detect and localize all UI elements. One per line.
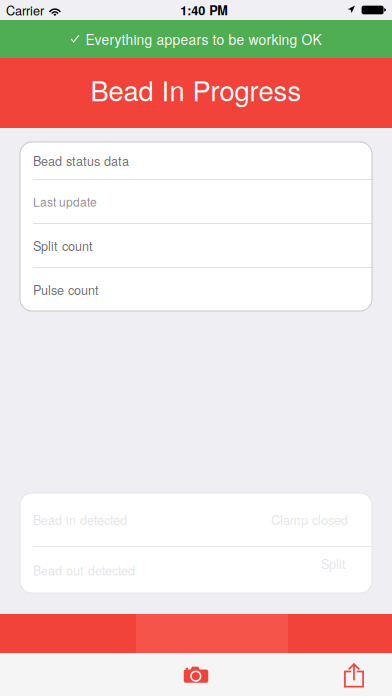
button[interactable]: Bead in detected xyxy=(20,493,372,546)
button[interactable]: Bead status data xyxy=(20,142,372,179)
button[interactable]: Camera xyxy=(164,653,228,696)
staticText: Bead out detected xyxy=(33,561,135,579)
staticText: Pulse count xyxy=(33,280,99,298)
button[interactable]: Last update xyxy=(20,180,372,223)
button[interactable]: Bead out detected xyxy=(20,547,372,593)
button[interactable]: Action xyxy=(0,614,392,653)
staticText: 1:40 PM xyxy=(180,1,228,19)
staticText: Split count xyxy=(33,236,93,254)
staticText: Everything appears to be working OK xyxy=(85,29,321,49)
staticText: Last update xyxy=(33,193,97,210)
button[interactable]: Split count xyxy=(20,224,372,267)
button[interactable]: Pulse count xyxy=(20,268,372,311)
staticText: Carrier xyxy=(6,1,44,19)
staticText: Bead in detected xyxy=(33,510,127,528)
button[interactable]: Share xyxy=(327,653,381,696)
staticText: Clamp closed xyxy=(271,510,348,528)
staticText: Bead status data xyxy=(33,151,129,169)
staticText: Bead In Progress xyxy=(90,70,301,109)
staticText: Split xyxy=(321,554,346,572)
